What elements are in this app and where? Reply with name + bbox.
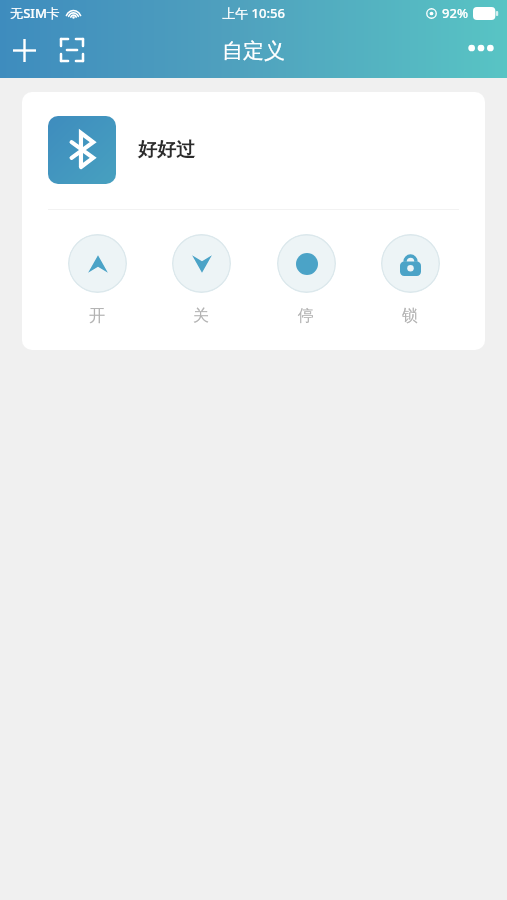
staticText: 好好过 [138, 138, 195, 162]
staticText: 上午 10:56 [222, 4, 285, 22]
staticText: 停 [298, 306, 314, 326]
button[interactable]: 关 [157, 232, 245, 328]
button[interactable]: 停 [262, 232, 350, 328]
button[interactable]: 开 [53, 232, 141, 328]
button[interactable]: 好好过 [22, 92, 485, 350]
staticText: 92% [442, 4, 468, 22]
staticText: 开 [89, 306, 105, 326]
staticText: 关 [193, 306, 209, 326]
staticText: 锁 [402, 306, 418, 326]
staticText: 无SIM卡 [10, 4, 60, 22]
button[interactable]: Scan code [48, 26, 96, 74]
staticText: 自定义 [222, 38, 285, 64]
button[interactable]: More options [455, 22, 507, 74]
button[interactable]: Add device [0, 26, 48, 74]
button[interactable]: 锁 [366, 232, 454, 328]
